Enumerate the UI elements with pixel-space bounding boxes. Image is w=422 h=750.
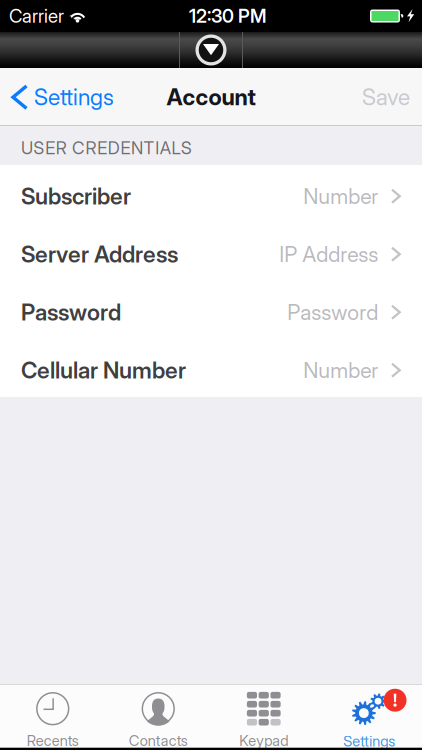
button[interactable]: Contacts: [105, 685, 211, 748]
staticText: Carrier: [9, 5, 64, 27]
staticText: USER CREDENTIALS: [21, 137, 192, 158]
staticText: Cellular Number: [21, 356, 186, 384]
button[interactable]: Server Address: [0, 223, 422, 281]
staticText: 12:30 PM: [189, 5, 266, 27]
button[interactable]: Password: [0, 281, 422, 339]
button[interactable]: Hide keyboard: [180, 32, 242, 68]
button[interactable]: Keypad: [211, 685, 316, 748]
staticText: Number: [303, 357, 378, 383]
staticText: Password: [287, 299, 378, 325]
button[interactable]: Subscriber: [0, 165, 422, 223]
button[interactable]: Cellular Number: [0, 339, 422, 397]
staticText: Contacts: [129, 732, 188, 749]
button[interactable]: Settings: [0, 68, 124, 126]
button[interactable]: Recents: [0, 685, 105, 748]
staticText: Settings: [34, 83, 114, 111]
staticText: Settings: [343, 732, 395, 750]
staticText: Number: [303, 183, 378, 209]
staticText: Account: [166, 83, 255, 111]
staticText: Keypad: [239, 732, 288, 749]
staticText: Server Address: [21, 240, 178, 268]
staticText: Recents: [27, 732, 79, 749]
staticText: IP Address: [279, 241, 378, 267]
staticText: Subscriber: [21, 182, 131, 210]
button[interactable]: Save: [348, 68, 422, 126]
staticText: Save: [362, 83, 410, 111]
button[interactable]: Settings: [316, 685, 422, 748]
staticText: Password: [21, 298, 121, 326]
